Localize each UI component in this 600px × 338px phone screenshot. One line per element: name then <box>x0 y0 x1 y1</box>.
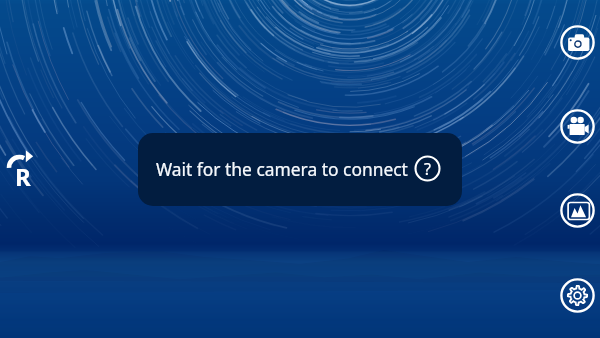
button[interactable]: Wait for the camera to connect <box>138 133 462 206</box>
button[interactable]: Gallery <box>555 168 600 253</box>
button[interactable]: Record video <box>555 84 600 168</box>
staticText: R <box>15 160 31 193</box>
button[interactable]: Take photo <box>555 0 600 84</box>
staticText: Wait for the camera to connect <box>156 157 408 181</box>
button[interactable]: Rotate <box>2 144 44 194</box>
staticText: ? <box>424 158 431 180</box>
button[interactable]: Settings <box>555 253 600 338</box>
